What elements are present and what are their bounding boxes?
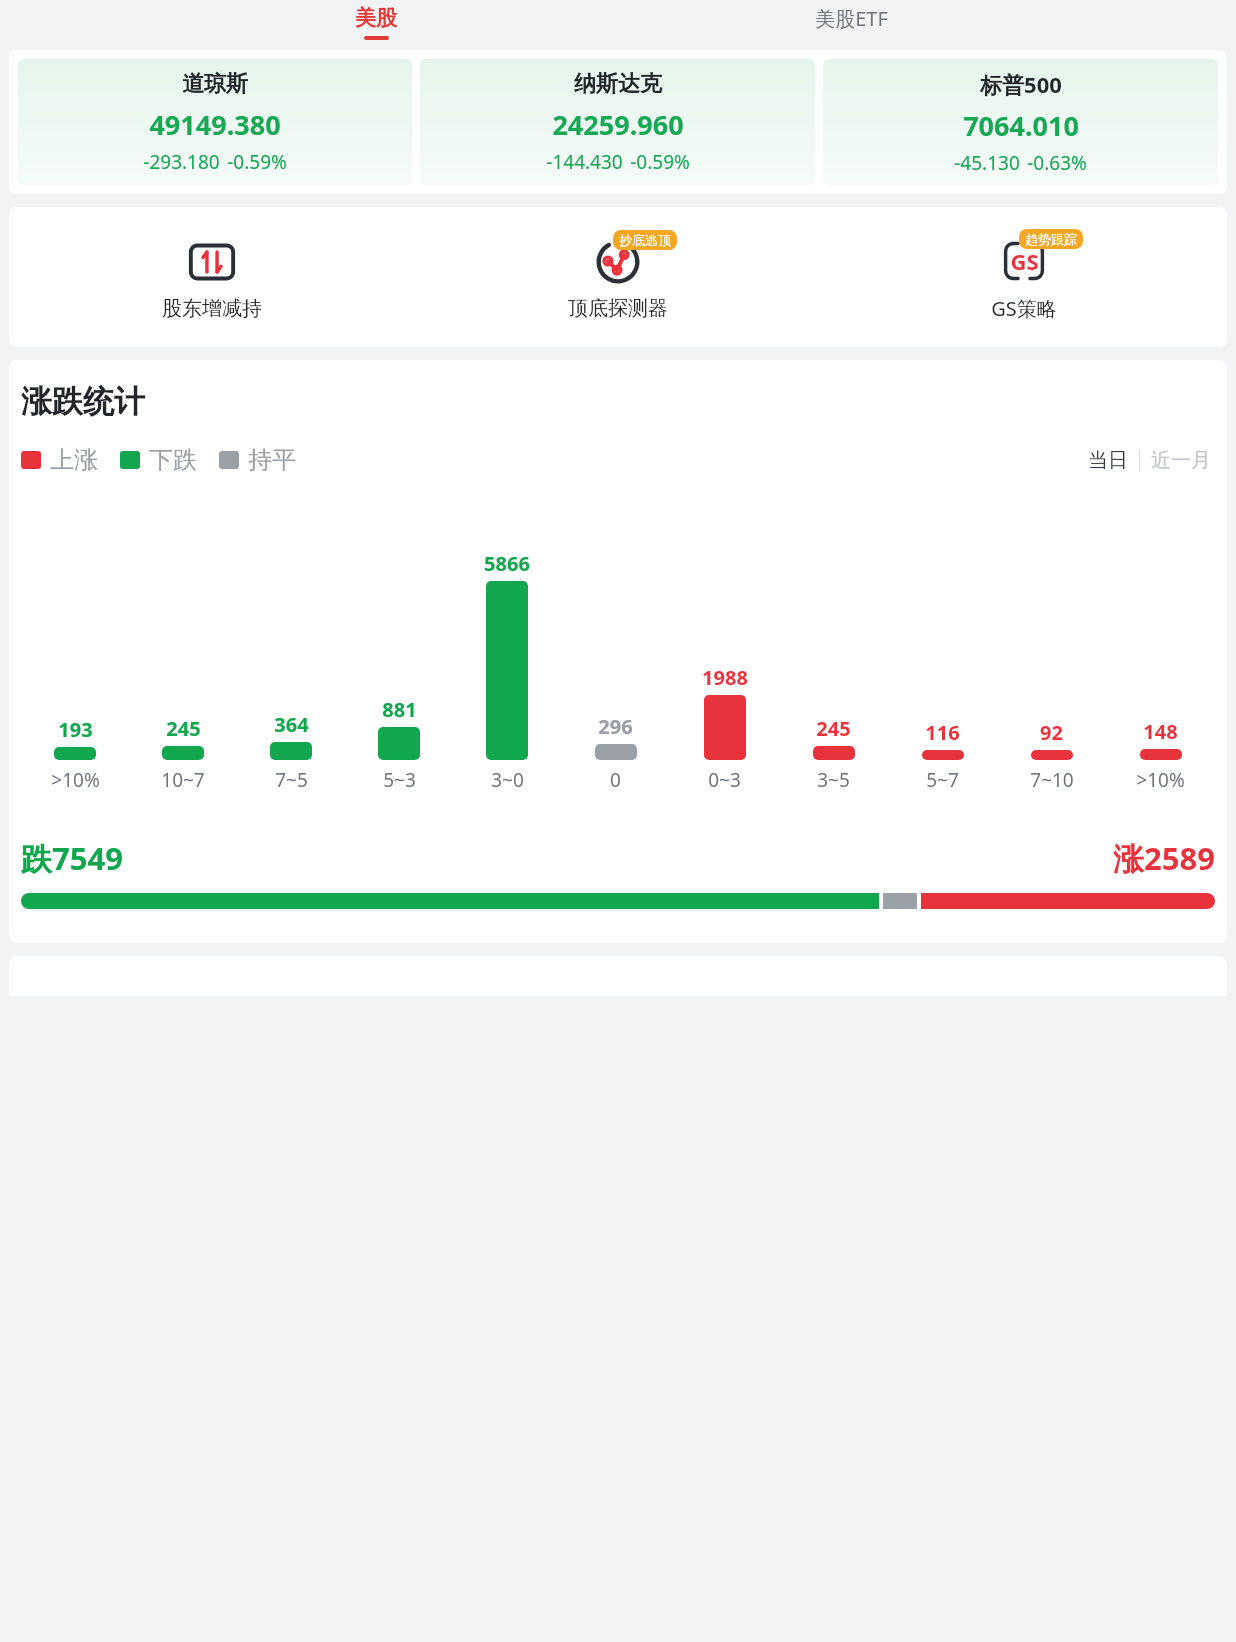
staticText: -144.430 <box>546 149 623 175</box>
staticText: 纳斯达克 <box>574 70 662 98</box>
button[interactable]: 上涨 <box>21 445 98 475</box>
staticText: 5~3 <box>383 767 416 793</box>
button[interactable]: 股东增减持 <box>9 207 415 347</box>
staticText: 抄底逃顶 <box>619 232 671 248</box>
staticText: 7~5 <box>275 767 308 793</box>
staticText: 当日 <box>1088 448 1128 473</box>
staticText: 涨跌统计 <box>21 382 145 421</box>
other: 股东增减持 <box>189 239 235 285</box>
staticText: 10~7 <box>161 767 205 793</box>
staticText: -45.130 <box>954 150 1020 176</box>
staticText: 881 <box>382 696 417 723</box>
staticText: 49149.380 <box>149 106 281 143</box>
staticText: -0.59% <box>227 149 287 175</box>
button[interactable]: GS策略 <box>821 207 1227 347</box>
staticText: 0~3 <box>708 767 741 793</box>
staticText: 5~7 <box>926 767 959 793</box>
staticText: 3~5 <box>817 767 850 793</box>
staticText: 5866 <box>484 550 530 577</box>
staticText: 涨2589 <box>1113 837 1215 879</box>
button[interactable]: 道琼斯 <box>18 59 412 185</box>
staticText: GS策略 <box>991 295 1057 322</box>
staticText: 245 <box>166 715 201 742</box>
button[interactable]: 持平 <box>219 445 296 475</box>
staticText: 3~0 <box>491 767 524 793</box>
button[interactable]: 近一月 <box>1147 448 1215 473</box>
staticText: 股东增减持 <box>162 296 262 321</box>
button[interactable]: 顶底探测器 <box>415 207 821 347</box>
staticText: 148 <box>1143 718 1178 745</box>
staticText: 1988 <box>702 664 748 691</box>
staticText: 364 <box>274 711 309 738</box>
staticText: -0.59% <box>630 149 690 175</box>
button[interactable]: 标普500 <box>823 59 1218 185</box>
staticText: 92 <box>1040 719 1063 746</box>
staticText: 193 <box>58 716 93 743</box>
staticText: 持平 <box>248 445 296 475</box>
staticText: 7~10 <box>1030 767 1074 793</box>
staticText: 下跌 <box>149 445 197 475</box>
staticText: 245 <box>816 715 851 742</box>
staticText: 296 <box>598 713 633 740</box>
button[interactable]: 美股ETF <box>751 0 951 44</box>
staticText: 7064.010 <box>963 107 1079 144</box>
staticText: >10% <box>1136 767 1185 793</box>
button[interactable]: 下跌 <box>120 445 197 475</box>
staticText: 美股 <box>355 5 397 31</box>
staticText: 跌7549 <box>21 837 123 879</box>
staticText: -293.180 <box>143 149 220 175</box>
button[interactable]: 当日 <box>1084 448 1132 473</box>
other: 顶底探测器 <box>595 239 641 285</box>
staticText: 上涨 <box>50 445 98 475</box>
staticText: >10% <box>51 767 100 793</box>
staticText: 标普500 <box>980 69 1062 99</box>
staticText: 美股ETF <box>815 5 888 32</box>
staticText: 近一月 <box>1151 448 1211 473</box>
button[interactable]: 美股 <box>286 0 466 44</box>
staticText: 0 <box>610 767 621 793</box>
staticText: 道琼斯 <box>182 70 248 98</box>
staticText: 顶底探测器 <box>568 296 668 321</box>
button[interactable]: 纳斯达克 <box>420 59 815 185</box>
staticText: 趋势跟踪 <box>1025 231 1077 247</box>
staticText: -0.63% <box>1027 150 1087 176</box>
staticText: 116 <box>925 719 960 746</box>
other: GS策略 <box>1001 238 1047 284</box>
staticText: 24259.960 <box>552 106 684 143</box>
staticText: GS <box>1010 246 1039 276</box>
